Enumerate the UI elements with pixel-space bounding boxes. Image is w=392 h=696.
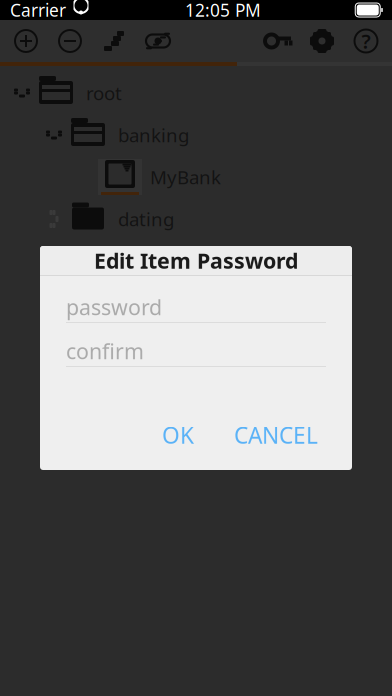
button[interactable]: Master password (256, 19, 300, 63)
staticText: 12:05 PM (185, 0, 261, 21)
button[interactable]: Hide passwords (136, 19, 180, 63)
button[interactable]: root (0, 72, 392, 114)
button[interactable]: MyBank (0, 156, 392, 198)
staticText: MyBank (150, 165, 221, 189)
staticText: password (66, 293, 162, 321)
button[interactable]: Settings (300, 19, 344, 63)
button[interactable]: CANCEL (226, 412, 326, 458)
staticText: OK (162, 420, 194, 450)
staticText: Carrier (10, 0, 66, 21)
button[interactable]: dating (0, 198, 392, 240)
button[interactable]: Edit item (92, 19, 136, 63)
button[interactable]: Help (344, 19, 388, 63)
staticText: confirm (66, 337, 144, 365)
button[interactable]: banking (0, 114, 392, 156)
button[interactable]: OK (148, 412, 208, 458)
staticText: dating (118, 207, 174, 231)
staticText: ? (361, 28, 370, 54)
staticText: Edit Item Password (94, 246, 298, 275)
staticText: root (86, 81, 122, 105)
staticText: banking (118, 123, 189, 147)
staticText: CANCEL (234, 420, 318, 450)
button[interactable]: Add item (4, 19, 48, 63)
button[interactable]: Remove item (48, 19, 92, 63)
